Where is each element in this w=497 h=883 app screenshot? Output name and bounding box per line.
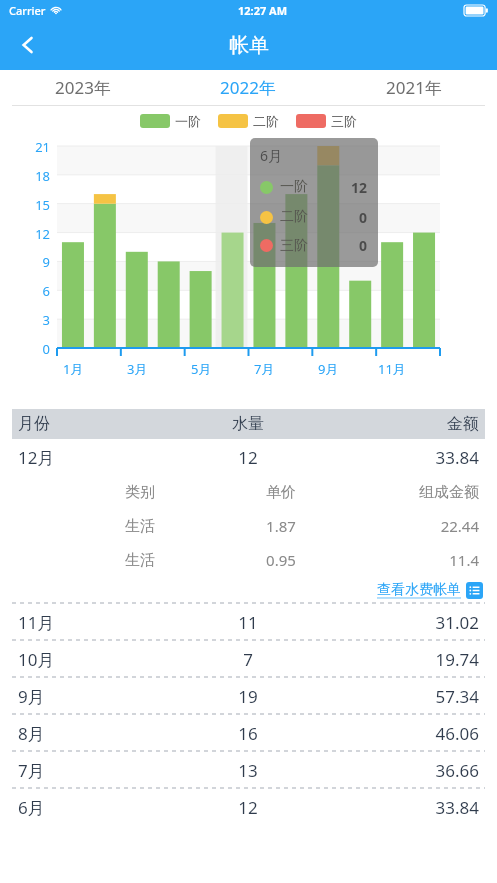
staticText: 7月: [254, 360, 275, 378]
button[interactable]: 6月: [0, 789, 497, 825]
staticText: 组成金额: [333, 483, 479, 502]
staticText: 31.02: [325, 611, 479, 634]
button[interactable]: Back: [6, 23, 50, 67]
staticText: 查看水费帐单: [377, 581, 461, 599]
staticText: 9: [42, 253, 50, 271]
staticText: 22.44: [333, 516, 479, 536]
staticText: 16: [171, 722, 325, 745]
staticText: 7月: [18, 759, 171, 782]
staticText: 36.66: [325, 759, 479, 782]
staticText: 3: [42, 311, 50, 329]
staticText: 一阶: [175, 113, 201, 129]
staticText: 57.34: [325, 685, 479, 708]
staticText: 0: [42, 340, 50, 358]
staticText: 1.87: [229, 516, 333, 536]
staticText: 8月: [18, 722, 171, 745]
staticText: 7: [171, 648, 325, 671]
staticText: 金额: [325, 414, 479, 434]
staticText: 2022年: [220, 76, 276, 99]
staticText: 33.84: [325, 446, 479, 469]
staticText: Carrier: [9, 3, 46, 18]
button[interactable]: 8月: [0, 715, 497, 751]
staticText: 9月: [18, 685, 171, 708]
staticText: 13: [171, 759, 325, 782]
button[interactable]: 7月: [0, 752, 497, 788]
staticText: 单价: [229, 483, 333, 502]
staticText: 水量: [171, 414, 325, 434]
staticText: 11月: [378, 360, 406, 378]
staticText: 12月: [18, 446, 171, 469]
staticText: 19.74: [325, 648, 479, 671]
staticText: 一阶: [280, 178, 308, 196]
staticText: 1月: [63, 360, 84, 378]
staticText: 19: [171, 685, 325, 708]
staticText: 12:27 AM: [238, 3, 288, 18]
staticText: 15: [35, 196, 50, 214]
button[interactable]: 2021年: [331, 70, 497, 105]
staticText: 3月: [127, 360, 148, 378]
staticText: 21: [35, 138, 50, 156]
staticText: 6月: [18, 796, 171, 819]
button[interactable]: 10月: [0, 641, 497, 677]
staticText: 12: [171, 446, 325, 469]
button[interactable]: 9月: [0, 678, 497, 714]
staticText: 二阶: [253, 113, 279, 129]
staticText: 帐单: [229, 33, 269, 58]
button[interactable]: 2023年: [0, 70, 165, 105]
staticText: 9月: [318, 360, 339, 378]
staticText: 46.06: [325, 722, 479, 745]
staticText: 0: [359, 208, 368, 227]
staticText: 12: [35, 225, 50, 243]
staticText: 10月: [18, 648, 171, 671]
staticText: 2021年: [386, 76, 442, 99]
staticText: 三阶: [331, 113, 357, 129]
staticText: 生活: [125, 551, 229, 570]
staticText: 0.95: [229, 550, 333, 570]
staticText: 生活: [125, 517, 229, 536]
staticText: 18: [35, 167, 50, 185]
staticText: 33.84: [325, 796, 479, 819]
staticText: 11.4: [333, 550, 479, 570]
staticText: 0: [359, 236, 368, 255]
staticText: 2023年: [55, 76, 111, 99]
staticText: 类别: [125, 483, 229, 502]
button[interactable]: 12月: [0, 439, 497, 604]
staticText: 11月: [18, 611, 171, 634]
staticText: 5月: [191, 360, 212, 378]
staticText: 6: [42, 282, 50, 300]
button[interactable]: 查看水费帐单: [377, 581, 483, 599]
staticText: 二阶: [280, 208, 308, 226]
staticText: 12: [171, 796, 325, 819]
button[interactable]: 11月: [0, 604, 497, 640]
staticText: 11: [171, 611, 325, 634]
staticText: 三阶: [280, 237, 308, 255]
staticText: 6月: [260, 146, 283, 165]
staticText: 月份: [18, 414, 171, 434]
button[interactable]: 2022年: [165, 70, 331, 105]
staticText: 12: [351, 178, 368, 197]
